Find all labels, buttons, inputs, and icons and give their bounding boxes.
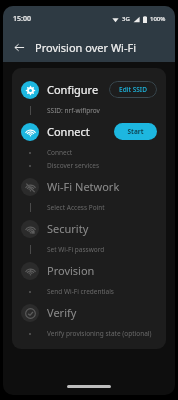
staticText: 15:00 <box>13 14 31 24</box>
staticText: 3G <box>122 15 130 23</box>
staticText: Connect <box>47 148 73 157</box>
staticText: 100% <box>150 15 166 23</box>
staticText: Set Wi-Fi password <box>47 245 105 254</box>
button[interactable]: Edit SSID <box>109 81 157 98</box>
staticText: Start <box>127 127 144 136</box>
staticText: Security <box>47 221 89 236</box>
button[interactable]: Configure <box>12 75 166 104</box>
button[interactable]: Start <box>114 123 157 140</box>
staticText: Wi-Fi Network <box>47 179 120 194</box>
staticText: Provision <box>47 263 95 278</box>
staticText: Edit SSID <box>119 85 147 94</box>
staticText: SSID: nrf-wifiprov <box>47 106 100 115</box>
button[interactable]: Connect <box>12 117 166 146</box>
button[interactable]: Provision <box>12 256 166 285</box>
staticText: Connect <box>47 124 90 139</box>
staticText: Discover services <box>47 161 100 170</box>
button[interactable]: Security <box>12 214 166 243</box>
staticText: Verify provisioning state (optional) <box>47 329 152 338</box>
staticText: Select Access Point <box>47 203 105 212</box>
staticText: Verify <box>47 305 77 320</box>
staticText: Provision over Wi-Fi <box>35 40 137 55</box>
button[interactable]: Verify <box>12 298 166 327</box>
staticText: Configure <box>47 82 99 97</box>
button[interactable]: Wi-Fi Network <box>12 172 166 201</box>
button[interactable]: Back <box>9 37 29 57</box>
staticText: Send Wi-Fi credentials <box>47 287 114 296</box>
